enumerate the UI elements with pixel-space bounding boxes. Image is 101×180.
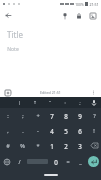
staticText: 4 xyxy=(50,127,54,135)
button[interactable]: | xyxy=(12,97,27,108)
staticText: 7 xyxy=(50,112,54,120)
staticText: 9 xyxy=(78,112,82,120)
staticText: 8 xyxy=(64,112,68,120)
staticText: # xyxy=(6,142,10,150)
staticText: " xyxy=(49,100,51,106)
button[interactable]: 9 xyxy=(73,108,87,123)
button[interactable]: 2 xyxy=(59,138,73,153)
staticText: ? xyxy=(93,112,96,120)
staticText: ! xyxy=(93,127,95,135)
staticText: % xyxy=(20,142,25,150)
staticText: * xyxy=(36,142,40,150)
button[interactable]: Change language xyxy=(0,153,13,170)
button[interactable]: More options xyxy=(89,88,98,97)
button[interactable]: + xyxy=(30,108,45,123)
staticText: 21:51 xyxy=(89,2,99,7)
button[interactable]: 7 xyxy=(45,108,59,123)
button[interactable]: Archive xyxy=(73,10,84,21)
staticText: | xyxy=(18,100,21,106)
button[interactable]: : xyxy=(57,97,72,108)
button[interactable]: Voice input xyxy=(87,97,101,108)
button[interactable]: 4 xyxy=(45,123,59,138)
button[interactable]: " xyxy=(42,97,57,108)
staticText: _ xyxy=(79,158,82,166)
button[interactable]: 6 xyxy=(73,123,87,138)
button[interactable]: . xyxy=(15,123,30,138)
staticText: , xyxy=(7,127,9,135)
button[interactable]: _ xyxy=(74,153,86,170)
button[interactable]: % xyxy=(15,138,30,153)
button[interactable]: * xyxy=(30,138,45,153)
button[interactable]: ! xyxy=(87,123,101,138)
staticText: 2 xyxy=(64,142,68,150)
staticText: : xyxy=(64,100,66,106)
staticText: + xyxy=(36,112,40,120)
button[interactable]: - xyxy=(30,123,45,138)
button[interactable]: ? xyxy=(87,108,101,123)
staticText: . xyxy=(22,127,24,135)
button[interactable]: 5 xyxy=(59,123,73,138)
staticText: Title xyxy=(7,29,23,40)
staticText: = xyxy=(66,158,70,166)
staticText: ; xyxy=(22,112,24,120)
button[interactable]: Backspace xyxy=(87,138,101,153)
button[interactable]: 0 xyxy=(50,153,62,170)
button[interactable]: Back xyxy=(3,10,14,21)
staticText: / xyxy=(18,158,21,166)
staticText: ; xyxy=(79,100,81,106)
button[interactable]: # xyxy=(0,138,15,153)
button[interactable]: / xyxy=(13,153,25,170)
button[interactable]: Pin xyxy=(59,10,70,21)
button[interactable]: 1 xyxy=(45,138,59,153)
button[interactable]: = xyxy=(62,153,74,170)
staticText: : xyxy=(7,112,9,120)
staticText: ↑ xyxy=(33,100,37,105)
button[interactable]: Enter xyxy=(88,156,99,167)
button[interactable]: ↑ xyxy=(27,97,42,108)
staticText: Note xyxy=(7,46,19,53)
staticText: 0 xyxy=(54,158,58,166)
staticText: Edited 21:51 xyxy=(40,90,61,95)
staticText: 100% xyxy=(75,2,84,7)
button[interactable]: ; xyxy=(15,108,30,123)
button[interactable]: ; xyxy=(72,97,87,108)
staticText: 3 xyxy=(78,142,82,150)
button[interactable]: 8 xyxy=(59,108,73,123)
button[interactable]: Space xyxy=(27,155,48,168)
staticText: 1 xyxy=(50,142,54,150)
staticText: - xyxy=(37,127,39,135)
button[interactable]: Add image xyxy=(87,10,98,21)
button[interactable]: Add xyxy=(3,88,12,97)
button[interactable]: : xyxy=(0,108,15,123)
button[interactable]: , xyxy=(0,123,15,138)
staticText: 6 xyxy=(78,127,82,135)
button[interactable]: 3 xyxy=(73,138,87,153)
staticText: 5 xyxy=(64,127,68,135)
